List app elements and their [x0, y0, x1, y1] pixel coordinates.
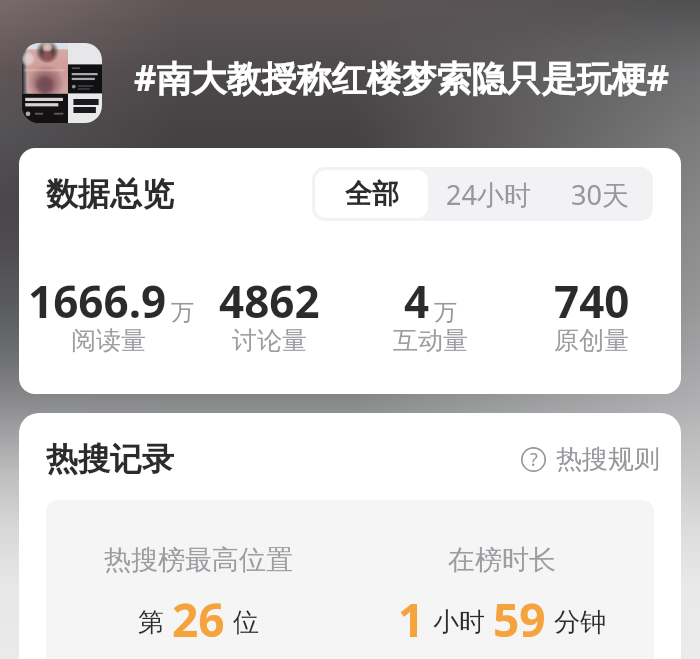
staticText: 1 — [398, 588, 425, 651]
staticText: 数据总览 — [46, 174, 174, 214]
staticText: 全部 — [345, 177, 399, 211]
staticText: 分钟 — [554, 606, 606, 639]
staticText: 互动量 — [393, 325, 468, 356]
staticText: 热搜榜最高位置 — [104, 543, 293, 577]
button[interactable]: ? — [521, 443, 660, 476]
staticText: 位 — [233, 606, 259, 639]
button[interactable]: 24小时 — [431, 167, 546, 221]
staticText: 热搜规则 — [556, 443, 660, 476]
staticText: 万 — [171, 298, 189, 327]
staticText: ? — [530, 447, 538, 472]
staticText: 30天 — [571, 176, 629, 213]
staticText: 热搜记录 — [46, 439, 174, 479]
staticText: 1666.9 — [28, 271, 167, 331]
staticText: 阅读量 — [71, 325, 146, 356]
staticText: 第 — [138, 606, 164, 639]
staticText: 4 — [404, 271, 430, 331]
staticText: 4862 — [219, 271, 320, 331]
button[interactable]: 30天 — [546, 167, 653, 221]
staticText: 小时 — [433, 606, 485, 639]
staticText: 740 — [554, 271, 630, 331]
staticText: 26 — [172, 588, 225, 651]
button[interactable]: Topic thumbnail — [22, 43, 102, 123]
staticText: 24小时 — [446, 176, 531, 213]
button[interactable]: 全部 — [315, 170, 428, 218]
staticText: 万 — [434, 298, 457, 327]
staticText: 原创量 — [554, 325, 629, 356]
staticText: #南大教授称红楼梦索隐只是玩梗# — [134, 54, 670, 102]
staticText: 59 — [493, 588, 546, 651]
staticText: 讨论量 — [232, 325, 307, 356]
staticText: 在榜时长 — [448, 543, 556, 577]
